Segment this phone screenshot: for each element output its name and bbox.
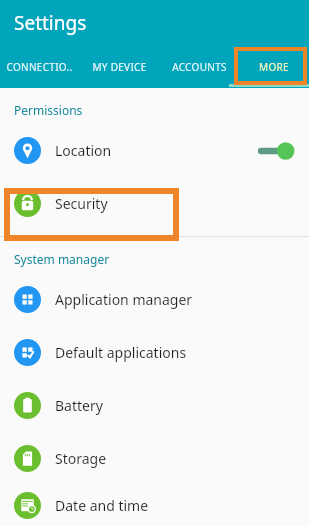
staticText: Security: [55, 194, 108, 213]
button[interactable]: MORE: [239, 54, 309, 80]
staticText: Battery: [55, 396, 103, 415]
button[interactable]: MY DEVICE: [79, 54, 159, 80]
button[interactable]: Location toggle: [259, 140, 295, 162]
staticText: Location: [55, 141, 112, 160]
button[interactable]: ACCOUNTS: [159, 54, 239, 80]
staticText: CONNECTIO..: [6, 60, 73, 74]
staticText: System manager: [14, 251, 110, 267]
staticText: Permissions: [14, 102, 83, 118]
staticText: Default applications: [55, 343, 187, 362]
button[interactable]: Default applications: [0, 326, 309, 379]
button[interactable]: CONNECTIO..: [0, 54, 79, 80]
button[interactable]: Application manager: [0, 273, 309, 326]
button[interactable]: Battery: [0, 379, 309, 432]
button[interactable]: Location: [0, 124, 309, 177]
staticText: Storage: [55, 449, 107, 468]
staticText: MY DEVICE: [92, 60, 147, 74]
staticText: MORE: [259, 60, 289, 74]
other: Security highlight: [7, 191, 176, 238]
staticText: Settings: [14, 10, 87, 36]
staticText: Date and time: [55, 496, 149, 515]
staticText: Application manager: [55, 290, 193, 309]
other: MORE tab highlight: [236, 49, 305, 83]
button[interactable]: Date and time: [0, 485, 309, 526]
button[interactable]: Security: [0, 177, 309, 230]
staticText: ACCOUNTS: [172, 60, 227, 74]
button[interactable]: Storage: [0, 432, 309, 485]
